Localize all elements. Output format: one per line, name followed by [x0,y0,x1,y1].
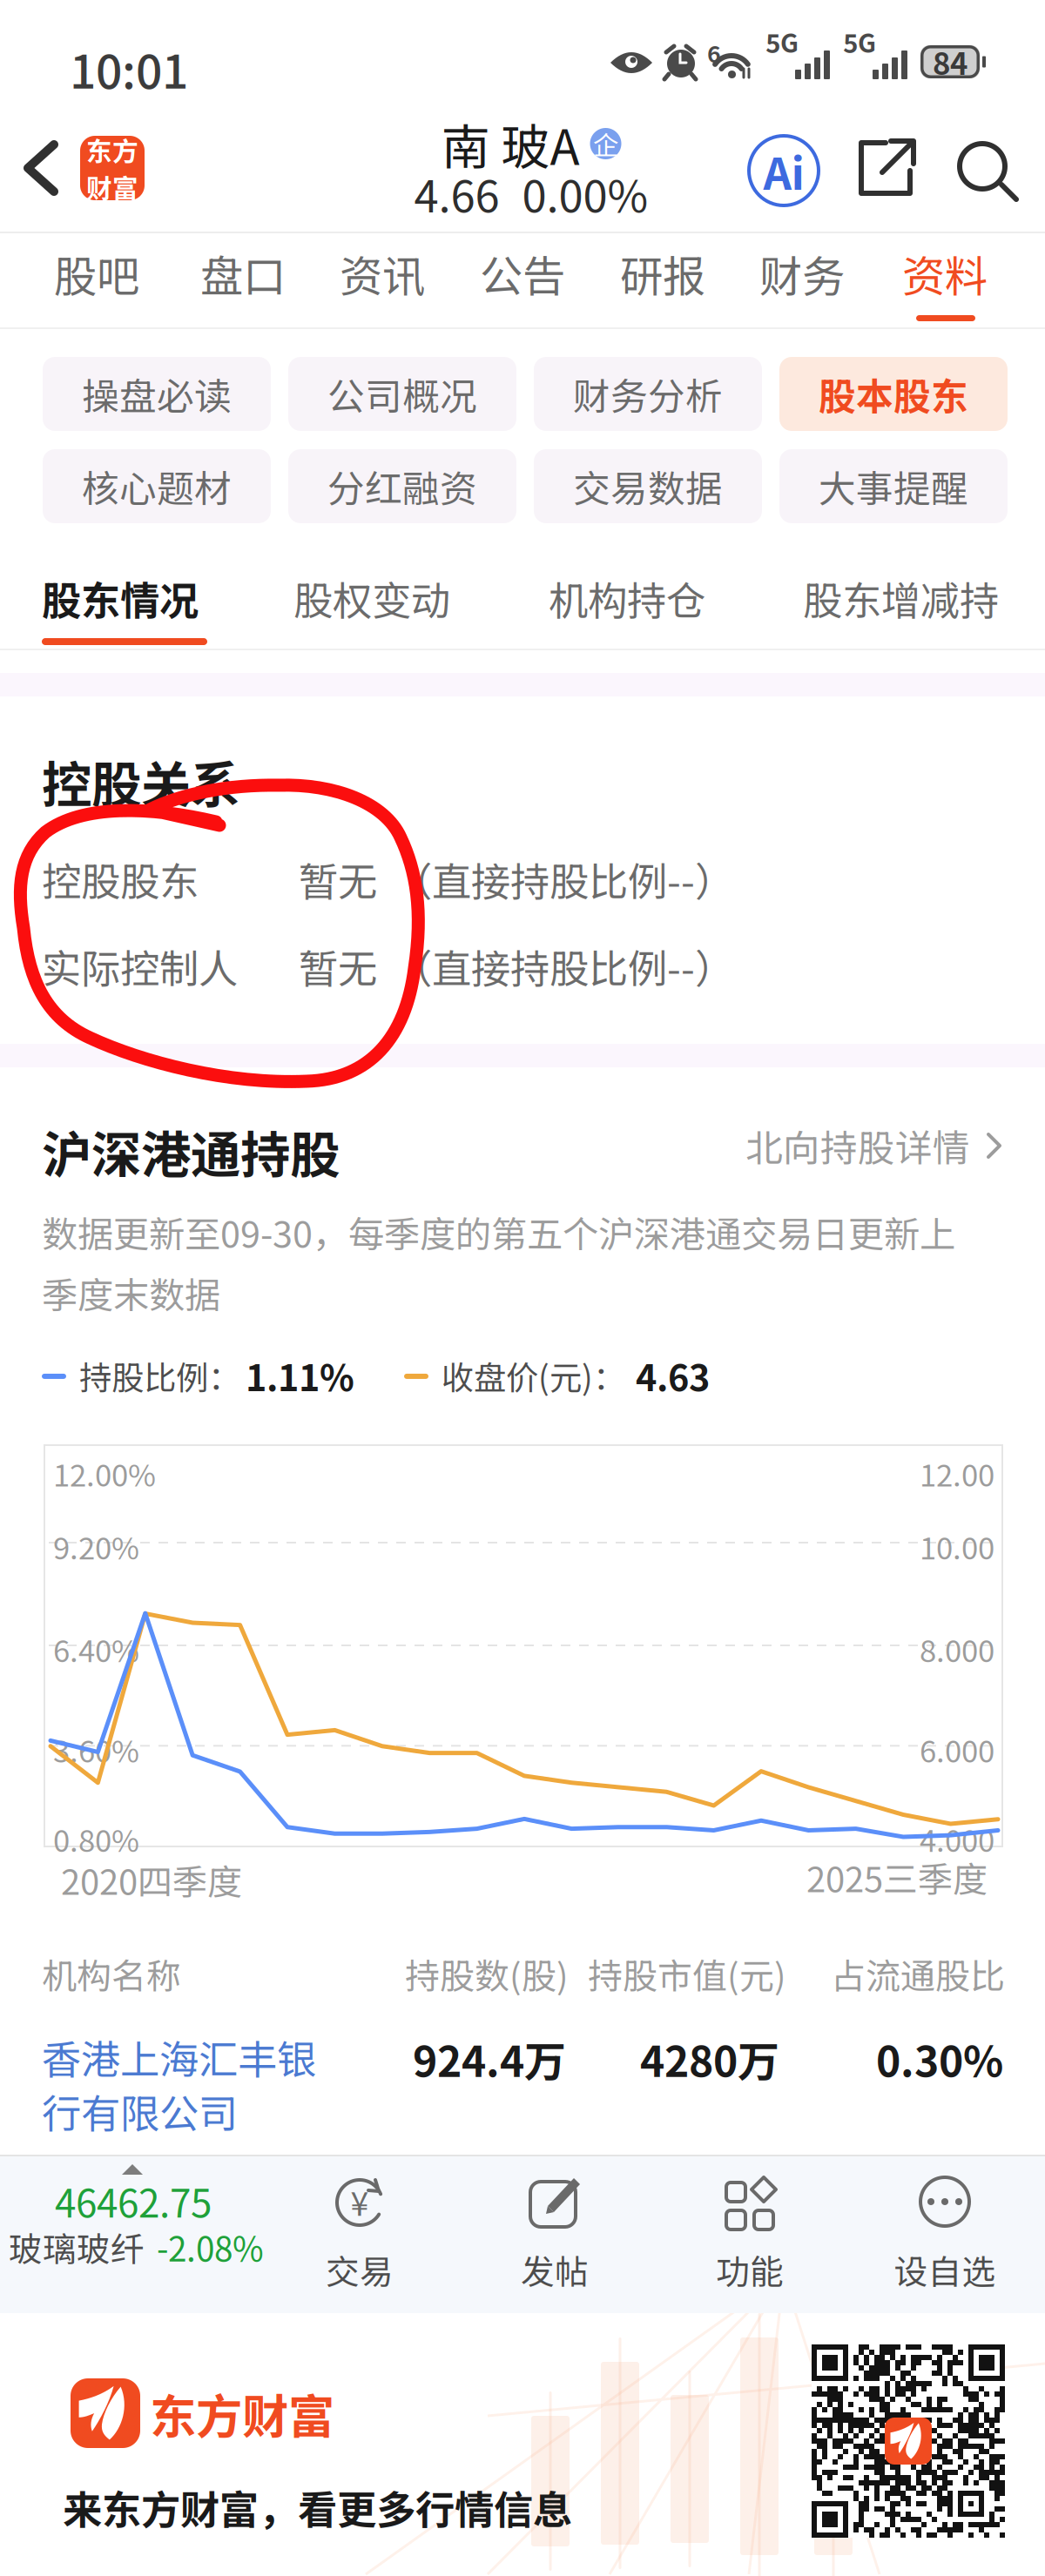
staticText: 持股市值(元) [588,1948,786,1999]
staticText: 1.11% [246,1349,354,1402]
staticText: 持股数(股) [405,1948,569,1999]
staticText: 研报 [620,242,705,304]
staticText: 股本股东 [819,367,968,421]
staticText: 股东情况 [42,570,199,627]
staticText: 控股股东 [42,851,199,908]
staticText: 玻璃玻纤 [9,2223,145,2271]
staticText: 12.00 [920,1451,994,1495]
staticText: 盘口 [200,242,286,304]
button[interactable]: 盘口 [173,235,313,312]
button[interactable]: 机构持仓 [549,571,792,625]
staticText: 大事提醒 [819,459,968,513]
staticText: 分红融资 [327,459,477,513]
staticText: 0.00% [522,161,648,225]
staticText: 84 [933,40,967,84]
staticText: 4.63 [636,1349,710,1402]
staticText: 10.00 [920,1524,994,1568]
staticText: 持股比例： [79,1352,240,1399]
staticText: 6 [707,36,721,69]
staticText: 财富 [86,168,138,205]
staticText: 发帖 [521,2245,589,2294]
button[interactable]: 财务分析 [534,357,762,431]
button[interactable]: ¥ [273,2174,447,2297]
staticText: 4.000 [920,1817,994,1861]
staticText: 资料 [902,242,988,304]
button[interactable]: 股东情况 [42,571,286,625]
staticText: 6.40% [53,1627,139,1671]
staticText: 924.4万 [413,2028,566,2089]
button[interactable]: 操盘必读 [43,357,271,431]
button[interactable]: 股权变动 [293,571,537,625]
button[interactable]: 公司概况 [288,357,516,431]
staticText: 股东增减持 [803,570,999,627]
button[interactable]: Back [5,122,89,214]
staticText: 数据更新至09-30，每季度的第五个沪深港通交易日更新上 [42,1206,955,1258]
staticText: 公司概况 [327,367,477,421]
staticText: 交易数据 [573,459,723,513]
staticText: 5G [843,23,876,60]
staticText: 2025三季度 [806,1852,988,1902]
button[interactable]: AI assistant [745,132,822,209]
staticText: 核心题材 [82,459,232,513]
button[interactable]: Share [849,132,922,205]
button[interactable]: 香港上海汇丰银 [42,2028,338,2133]
staticText: 财务 [759,242,845,304]
staticText: 东方财富 [150,2380,334,2447]
button[interactable]: 公告 [453,235,592,312]
staticText: 资讯 [340,242,425,304]
button[interactable]: 交易数据 [534,449,762,523]
staticText: 占流通股比 [831,1948,1005,1999]
button[interactable]: 北向持股详情 [745,1119,1005,1173]
button[interactable]: 发帖 [468,2174,642,2297]
staticText: 东方 [86,131,138,168]
button[interactable]: 设自选 [858,2174,1032,2297]
staticText: 来东方财富，看更多行情信息 [63,2479,572,2536]
button[interactable]: 资料 [875,235,1015,312]
staticText: 机构名称 [42,1948,181,1999]
staticText: 沪深港通持股 [42,1115,340,1187]
button[interactable]: 功能 [663,2174,837,2297]
staticText: 5G [765,23,799,60]
staticText: 8.000 [920,1627,994,1671]
staticText: 0.80% [53,1817,139,1861]
staticText: 企 [593,125,618,162]
staticText: ¥ [351,2178,369,2225]
button[interactable]: 股本股东 [779,357,1008,431]
button[interactable]: 股东增减持 [803,571,1045,625]
staticText: 4280万 [640,2028,779,2089]
staticText: 股权变动 [293,570,450,627]
button[interactable]: 研报 [593,235,732,312]
staticText: 0.30% [876,2028,1003,2089]
staticText: （直接持股比例--） [393,851,734,908]
staticText: 4.66 [414,161,499,225]
staticText: 实际控制人 [42,938,238,995]
staticText: （直接持股比例--） [393,938,734,995]
staticText: 10:01 [70,35,188,102]
button[interactable]: 分红融资 [288,449,516,523]
staticText: 公告 [480,242,565,304]
staticText: 功能 [716,2245,784,2294]
staticText: 股吧 [54,242,139,304]
button[interactable]: 财务 [732,235,872,312]
staticText: Ai [763,139,804,203]
staticText: 南 玻A [441,108,580,179]
staticText: 收盘价(元)： [442,1352,625,1399]
staticText: 机构持仓 [549,570,705,627]
button[interactable]: 资讯 [313,235,452,312]
button[interactable]: Search [952,132,1025,205]
staticText: 3.60% [53,1727,139,1771]
staticText: 操盘必读 [82,367,232,421]
staticText: 暂无 [299,938,377,995]
staticText: -2.08% [157,2223,264,2271]
staticText: 12.00% [53,1451,156,1495]
staticText: 北向持股详情 [745,1119,970,1173]
button[interactable]: 大事提醒 [779,449,1008,523]
button[interactable]: 股吧 [27,235,166,312]
staticText: 暂无 [299,851,377,908]
staticText: 行有限公司 [42,2082,238,2139]
staticText: 设自选 [894,2245,996,2294]
staticText: 香港上海汇丰银 [42,2028,316,2086]
staticText: 46462.75 [55,2173,212,2228]
staticText: 季度末数据 [42,1267,220,1319]
button[interactable]: 核心题材 [43,449,271,523]
